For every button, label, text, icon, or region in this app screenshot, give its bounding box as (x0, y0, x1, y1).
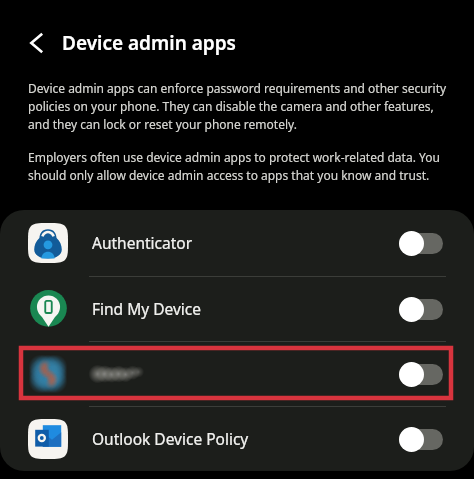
staticText: Outlook Device Policy (92, 428, 249, 449)
staticText: Employers often use device admin apps to… (28, 149, 440, 184)
button[interactable]: Find My Device (0, 277, 474, 341)
staticText: Device admin apps can enforce password r… (28, 80, 447, 133)
button[interactable]: Authenticator (0, 210, 474, 276)
button[interactable]: Back (21, 27, 53, 59)
button[interactable]: Turn on Outlook Device Policy (399, 426, 443, 452)
staticText: Authenticator (92, 232, 193, 253)
staticText: Device admin apps (62, 30, 236, 56)
button[interactable]: Turn on App (399, 361, 443, 387)
button[interactable]: Turn on Authenticator (399, 230, 443, 256)
staticText: Find My Device (92, 298, 201, 319)
button[interactable]: Outlook Device Policy (0, 407, 474, 471)
button[interactable]: Turn on Find My Device (399, 296, 443, 322)
button[interactable]: App (0, 342, 474, 406)
